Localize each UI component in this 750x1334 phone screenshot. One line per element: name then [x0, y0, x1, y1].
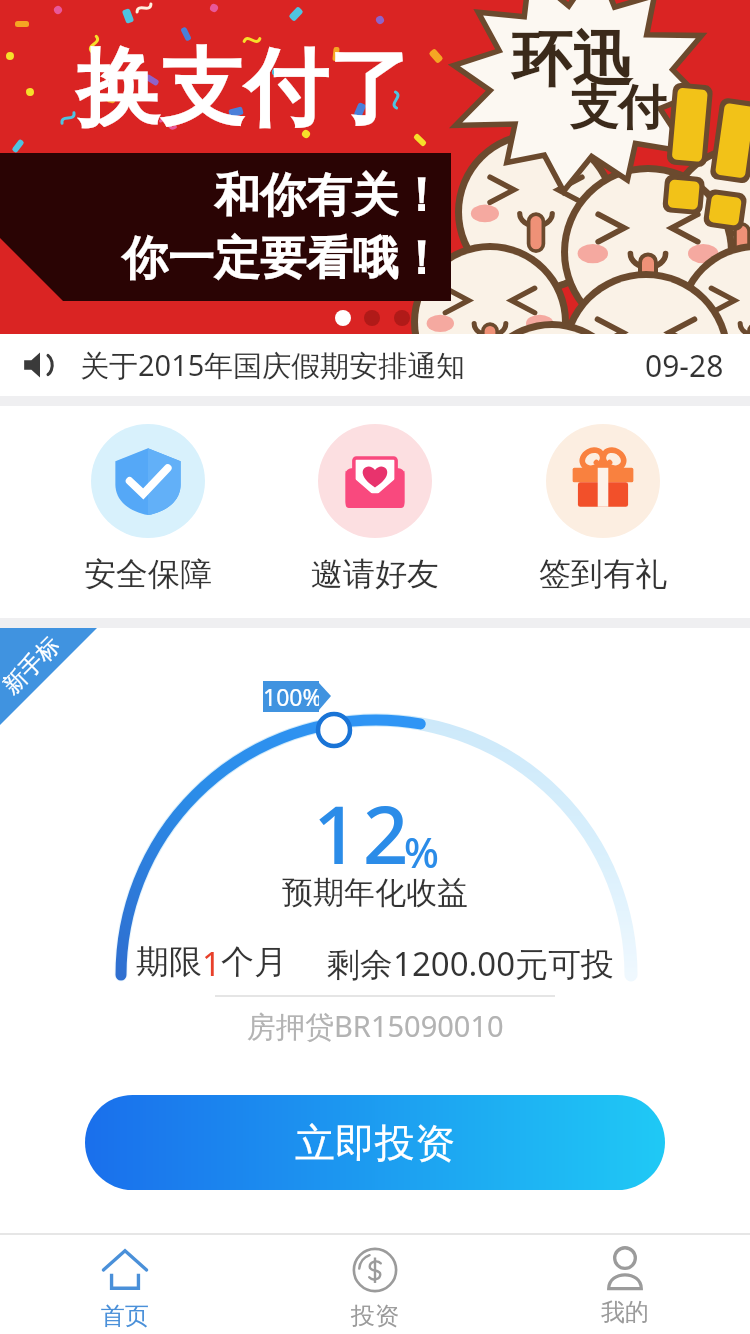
staticText: 1 — [202, 941, 221, 986]
button[interactable]: 关于2015年国庆假期安排通知 — [0, 334, 750, 396]
staticText: 我的 — [601, 1297, 649, 1327]
staticText: 和你有关！ — [214, 167, 444, 225]
staticText: 投资 — [351, 1301, 399, 1331]
staticText: 新手标 — [0, 631, 66, 700]
staticText: 剩余1200.00元可投 — [327, 941, 615, 986]
button[interactable]: 首页 — [0, 1235, 250, 1334]
staticText: 首页 — [101, 1301, 149, 1331]
staticText: % — [404, 824, 439, 880]
staticText: 100% — [263, 681, 319, 712]
staticText: 支付 — [570, 78, 666, 138]
other: Invite friends — [343, 449, 407, 513]
staticText: 立即投资 — [295, 1118, 455, 1168]
button[interactable]: 立即投资 — [85, 1095, 665, 1190]
staticText: 你一定要看哦！ — [122, 230, 444, 288]
staticText: 签到有礼 — [539, 554, 667, 594]
button[interactable]: 投资 — [250, 1235, 500, 1334]
other: Check-in rewards — [570, 448, 636, 514]
staticText: 预期年化收益 — [282, 873, 468, 912]
staticText: 安全保障 — [84, 554, 212, 594]
button[interactable]: 房押贷BR15090010 product — [0, 628, 750, 1058]
staticText: 12 — [313, 778, 413, 887]
staticText: 09-28 — [645, 345, 724, 386]
button[interactable]: Check-in rewards — [491, 406, 715, 618]
staticText: 房押贷BR15090010 — [247, 1006, 504, 1046]
staticText: 个月 — [221, 941, 287, 983]
staticText: 环迅 — [512, 22, 632, 98]
button[interactable]: Invite friends — [263, 406, 487, 618]
button[interactable]: 我的 — [500, 1235, 750, 1334]
other: Security — [114, 447, 182, 515]
button[interactable]: Promotion banner — [0, 0, 750, 334]
staticText: 关于2015年国庆假期安排通知 — [80, 345, 466, 385]
staticText: 期限 — [136, 941, 202, 983]
button[interactable]: Security — [36, 406, 260, 618]
staticText: 邀请好友 — [311, 554, 439, 594]
staticText: 换支付了 — [76, 36, 412, 142]
